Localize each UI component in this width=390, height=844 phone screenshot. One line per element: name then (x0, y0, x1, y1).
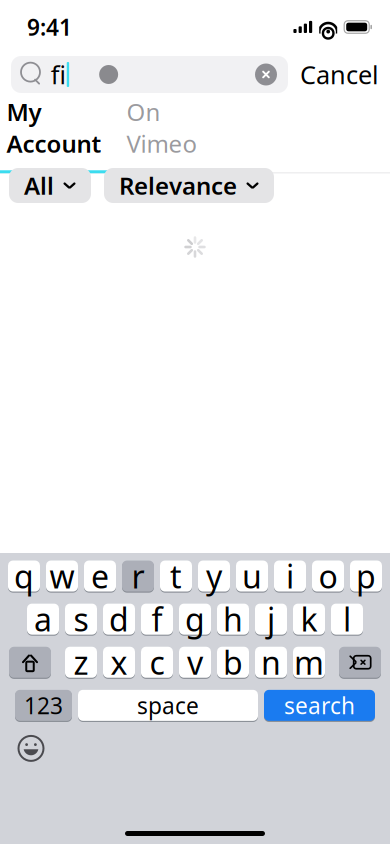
staticText: q (14, 555, 34, 597)
staticText: b (223, 641, 243, 683)
button[interactable]: q (8, 560, 40, 592)
staticText: f (151, 598, 162, 640)
button[interactable]: All (9, 168, 91, 203)
button[interactable]: space (78, 689, 258, 721)
staticText: u (242, 555, 262, 597)
button[interactable]: i (274, 560, 306, 592)
button[interactable]: Shift (9, 646, 51, 678)
button[interactable]: c (141, 646, 173, 678)
button[interactable]: v (179, 646, 211, 678)
button[interactable]: On Vimeo (108, 83, 216, 172)
staticText: g (185, 598, 205, 640)
button[interactable]: u (236, 560, 268, 592)
staticText: My Account (6, 96, 101, 159)
staticText: x (110, 641, 127, 683)
button[interactable]: Emoji keyboard (14, 731, 48, 765)
button[interactable]: g (179, 603, 211, 635)
staticText: p (356, 555, 376, 597)
button[interactable]: w (46, 560, 78, 592)
button[interactable]: t (160, 560, 192, 592)
button[interactable]: k (293, 603, 325, 635)
button[interactable]: m (293, 646, 325, 678)
staticText: j (267, 598, 275, 640)
button[interactable]: a (27, 603, 59, 635)
button[interactable]: Cancel (300, 58, 379, 91)
button[interactable]: d (103, 603, 135, 635)
button[interactable]: o (312, 560, 344, 592)
staticText: z (73, 641, 88, 683)
staticText: search (284, 690, 355, 720)
button[interactable]: b (217, 646, 249, 678)
staticText: t (170, 555, 182, 597)
staticText: 9:41 (27, 12, 72, 42)
staticText: l (343, 598, 351, 640)
button[interactable]: h (217, 603, 249, 635)
button[interactable]: r (122, 560, 154, 592)
button[interactable]: z (65, 646, 97, 678)
staticText: n (261, 641, 281, 683)
button[interactable]: p (350, 560, 382, 592)
staticText: s (73, 598, 88, 640)
button[interactable]: x (103, 646, 135, 678)
button[interactable]: Clear text (255, 63, 288, 85)
button[interactable]: search (264, 689, 375, 721)
staticText: All (24, 170, 54, 201)
staticText: d (109, 598, 129, 640)
staticText: w (49, 555, 74, 597)
button[interactable]: s (65, 603, 97, 635)
staticText: h (223, 598, 243, 640)
staticText: r (131, 555, 144, 597)
staticText: 123 (24, 690, 63, 720)
button[interactable]: n (255, 646, 287, 678)
staticText: Relevance (119, 170, 237, 201)
button[interactable]: My Account (0, 83, 108, 172)
button[interactable]: 123 (15, 689, 72, 721)
button[interactable]: Delete (339, 646, 381, 678)
button[interactable]: e (84, 560, 116, 592)
button[interactable]: l (331, 603, 363, 635)
button[interactable]: y (198, 560, 230, 592)
staticText: fi (51, 58, 66, 91)
staticText: m (294, 641, 324, 683)
staticText: y (206, 555, 222, 597)
staticText: o (318, 555, 337, 597)
staticText: space (137, 690, 199, 720)
staticText: e (91, 555, 109, 597)
staticText: k (300, 598, 317, 640)
staticText: a (34, 598, 52, 640)
button[interactable]: f (141, 603, 173, 635)
button[interactable]: Relevance (104, 168, 274, 203)
staticText: i (286, 555, 294, 597)
staticText: v (187, 641, 203, 683)
button[interactable]: j (255, 603, 287, 635)
staticText: On Vimeo (126, 96, 197, 159)
staticText: c (149, 641, 164, 683)
staticText: Cancel (300, 58, 379, 91)
